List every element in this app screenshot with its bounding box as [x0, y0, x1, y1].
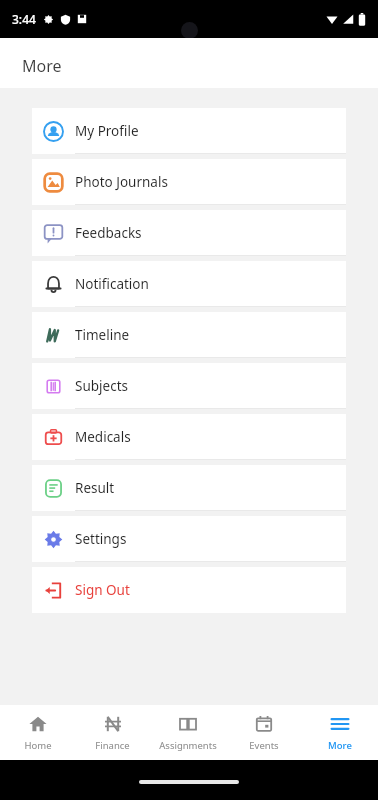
staticText: My Profile	[75, 122, 139, 140]
button[interactable]: Assignments	[150, 705, 226, 760]
button[interactable]: More	[302, 705, 378, 760]
staticText: Settings	[75, 530, 127, 548]
button[interactable]: Medicals	[32, 414, 346, 460]
staticText: Assignments	[159, 739, 217, 752]
staticText: More	[22, 55, 62, 77]
button[interactable]: Settings	[32, 516, 346, 562]
button[interactable]: My Profile	[32, 108, 346, 154]
button[interactable]: Feedbacks	[32, 210, 346, 256]
staticText: Home	[24, 739, 52, 752]
button[interactable]: Sign Out	[32, 567, 346, 613]
staticText: Medicals	[75, 428, 131, 446]
staticText: Notification	[75, 275, 149, 293]
button[interactable]: Photo Journals	[32, 159, 346, 205]
button[interactable]: Home	[0, 705, 75, 760]
staticText: Timeline	[75, 326, 130, 344]
staticText: Photo Journals	[75, 173, 168, 191]
staticText: Feedbacks	[75, 224, 142, 242]
staticText: Finance	[95, 739, 130, 752]
staticText: Sign Out	[75, 581, 130, 599]
staticText: Events	[249, 739, 279, 752]
button[interactable]: Events	[226, 705, 302, 760]
button[interactable]: Result	[32, 465, 346, 511]
button[interactable]: Subjects	[32, 363, 346, 409]
button[interactable]: Finance	[75, 705, 150, 760]
button[interactable]: Notification	[32, 261, 346, 307]
button[interactable]: Timeline	[32, 312, 346, 358]
staticText: More	[328, 739, 352, 752]
staticText: Subjects	[75, 377, 128, 395]
staticText: Result	[75, 479, 115, 497]
staticText: 3:44	[12, 11, 36, 27]
